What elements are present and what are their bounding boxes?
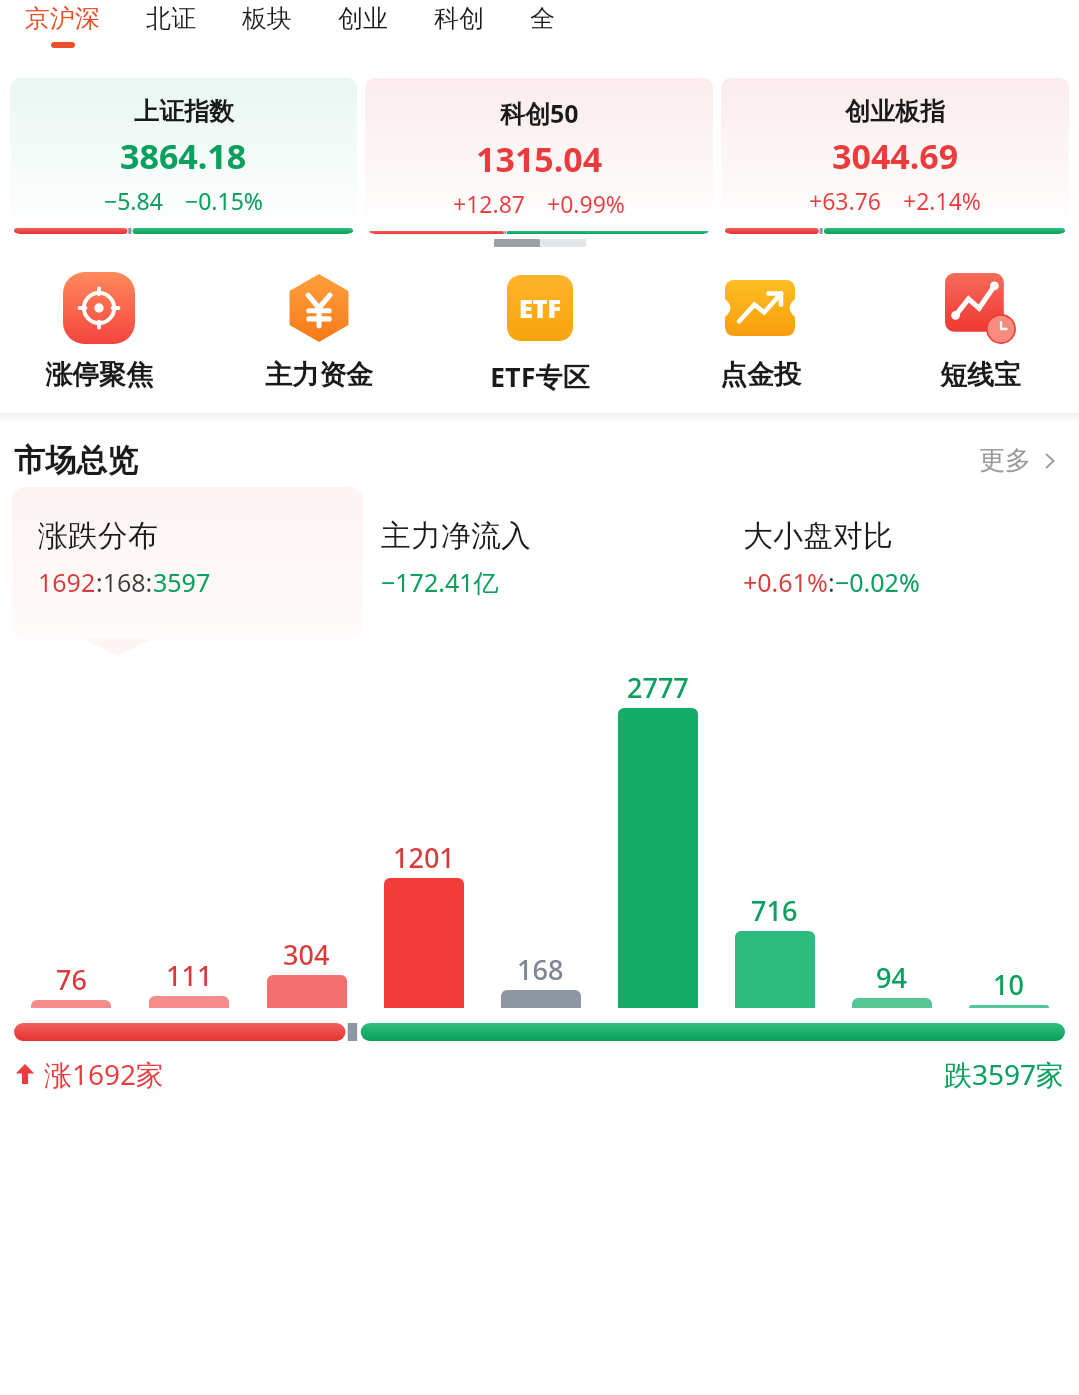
button[interactable]: 科创 [422,0,496,42]
button[interactable]: 创业板指 [721,78,1069,234]
staticText: 主力资金 [265,358,373,392]
staticText: 76 [56,961,87,998]
other: 上涨 [14,1063,36,1085]
staticText: 京沪深 [25,3,100,34]
staticText: 涨跌分布 [38,517,158,555]
staticText: −5.84 [104,185,163,216]
staticText: +0.99% [547,188,625,219]
staticText: 1692 [38,565,96,599]
staticText: 1201 [393,839,455,876]
button[interactable]: 主力净流入 [363,487,715,599]
button[interactable]: 更多 [975,440,1065,481]
button[interactable]: 大小盘对比 [715,487,1067,599]
staticText: +2.14% [903,185,981,216]
button[interactable]: 京沪深 [13,0,112,48]
staticText: 3597 [153,565,211,599]
button[interactable]: 716 [716,669,833,1019]
staticText: ETF专区 [490,358,590,395]
button[interactable]: 板块 [230,0,304,42]
button[interactable]: 全 [518,0,567,42]
button[interactable]: 点金投 [675,266,845,396]
staticText: 主力净流入 [381,517,531,555]
button[interactable]: ETF [455,266,625,399]
staticText: 1315.04 [476,136,603,182]
staticText: 北证 [146,3,196,34]
staticText: 716 [751,892,798,929]
staticText: 94 [876,959,907,996]
button[interactable]: 94 [833,669,950,1019]
button[interactable]: 主力资金 [234,266,404,396]
staticText: 跌3597家 [944,1055,1065,1093]
staticText: 上证指数 [134,96,234,127]
staticText: +0.61% [743,565,828,599]
staticText: 3864.18 [120,133,247,179]
button[interactable]: 76 [12,669,130,1019]
button[interactable]: 10 [950,669,1067,1019]
button[interactable]: 北证 [134,0,208,42]
staticText: 点金投 [720,358,801,392]
staticText: 2777 [627,669,689,706]
button[interactable]: 111 [130,669,248,1019]
staticText: 168 [517,951,564,988]
staticText: +63.76 [809,185,881,216]
staticText: 10 [993,966,1024,1003]
staticText: 板块 [242,3,292,34]
button[interactable]: 168 [482,669,599,1019]
button[interactable]: 涨停聚焦 [14,266,184,396]
staticText: −172.41亿 [381,565,499,599]
staticText: 涨1692家 [44,1055,165,1093]
button[interactable]: 2777 [599,669,716,1019]
staticText: −0.15% [185,185,263,216]
staticText: 创业 [338,3,388,34]
staticText: 科创50 [500,96,579,130]
button[interactable]: 304 [248,669,365,1019]
staticText: 全 [530,3,555,34]
staticText: ETF [519,291,561,325]
staticText: 创业板指 [845,96,945,127]
staticText: 涨停聚焦 [45,358,153,392]
staticText: −0.02% [835,565,920,599]
staticText: 3044.69 [832,133,959,179]
button[interactable]: 1201 [365,669,482,1019]
button[interactable]: 科创50 [365,78,713,234]
staticText: 更多 [979,444,1031,477]
staticText: 科创 [434,3,484,34]
staticText: : [828,565,835,599]
button[interactable]: 短线宝 [895,266,1065,396]
staticText: 111 [166,957,213,994]
staticText: :168: [96,565,153,599]
staticText: 短线宝 [940,358,1021,392]
button[interactable]: 创业 [326,0,400,42]
staticText: 大小盘对比 [743,517,893,555]
button[interactable]: 市场总览 [14,441,138,480]
button[interactable]: 上证指数 [10,78,357,234]
staticText: 304 [283,936,330,973]
staticText: +12.87 [453,188,525,219]
button[interactable]: 涨跌分布 [12,487,363,639]
